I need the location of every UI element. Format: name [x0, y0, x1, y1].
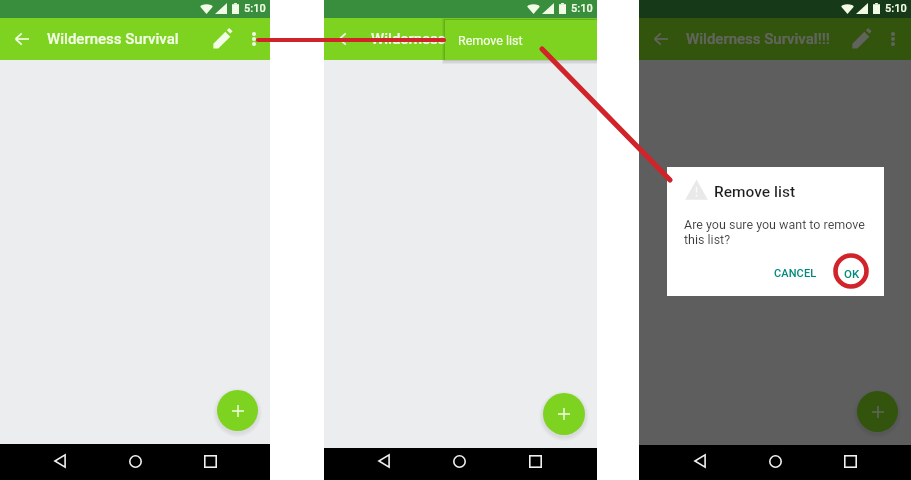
button[interactable]: Add item	[857, 391, 898, 432]
button[interactable]: Back	[48, 449, 72, 473]
staticText: Remove list	[714, 183, 796, 201]
staticText: Wilderness Survival	[371, 30, 503, 48]
staticText: OK	[844, 267, 860, 280]
button[interactable]: More options	[242, 27, 266, 51]
button[interactable]: Navigate up	[10, 27, 34, 51]
staticText: CANCEL	[774, 267, 817, 280]
button[interactable]: Navigate up	[334, 27, 358, 51]
button[interactable]: Back	[688, 449, 712, 473]
button[interactable]: OK	[838, 260, 866, 287]
staticText: 5:10	[885, 2, 907, 15]
button[interactable]: Navigate up	[649, 27, 673, 51]
staticText: Wilderness Survival!!!	[686, 30, 830, 48]
button[interactable]: Back	[372, 449, 396, 473]
button[interactable]: Edit	[533, 26, 559, 52]
staticText: 5:10	[571, 2, 593, 15]
button[interactable]: Remove list	[445, 20, 597, 60]
button[interactable]: CANCEL	[768, 260, 823, 287]
button[interactable]: Recent apps	[523, 449, 547, 473]
staticText: Wilderness Survival	[47, 30, 179, 48]
button[interactable]: Edit	[209, 26, 235, 52]
button[interactable]: Recent apps	[198, 449, 222, 473]
staticText: Remove list	[458, 33, 523, 48]
staticText: 5:10	[244, 2, 266, 15]
button[interactable]: Add item	[543, 393, 585, 435]
button[interactable]: Recent apps	[838, 449, 862, 473]
staticText: Are you sure you want to remove this lis…	[684, 217, 874, 247]
button[interactable]: Home	[763, 449, 787, 473]
button[interactable]: More options	[881, 27, 905, 51]
button[interactable]: Home	[447, 449, 471, 473]
button[interactable]: Home	[123, 449, 147, 473]
button[interactable]: Add item	[217, 390, 258, 431]
button[interactable]: Edit	[848, 26, 874, 52]
